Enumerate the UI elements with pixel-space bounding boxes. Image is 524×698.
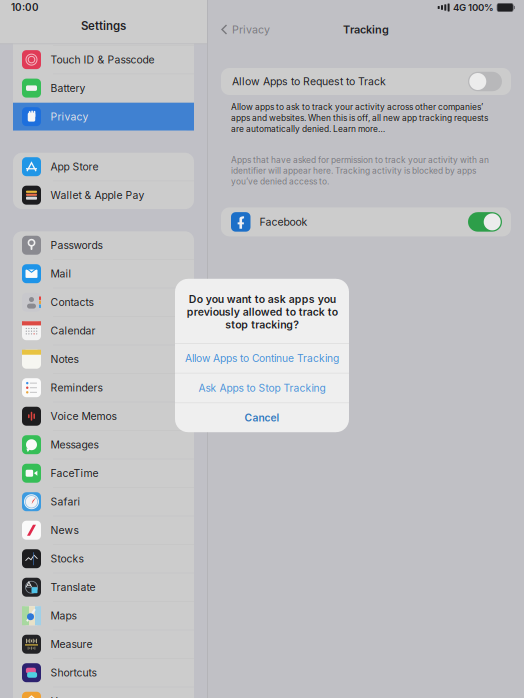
button[interactable]: Translate xyxy=(13,573,194,601)
staticText: General xyxy=(50,25,89,37)
staticText: Stocks xyxy=(50,552,83,565)
staticText: Touch ID & Passcode xyxy=(50,53,154,66)
staticText: App Store xyxy=(50,160,98,173)
button[interactable]: Messages xyxy=(13,431,194,459)
button[interactable]: Cancel xyxy=(175,403,349,432)
button[interactable]: Ask Apps to Stop Tracking xyxy=(175,373,349,402)
staticText: Maps xyxy=(50,609,76,622)
button[interactable]: FaceTime xyxy=(13,459,194,487)
staticText: Facebook xyxy=(259,215,307,228)
staticText: Passwords xyxy=(50,239,102,251)
staticText: Ask Apps to Stop Tracking xyxy=(198,382,325,394)
staticText: Translate xyxy=(50,581,95,593)
staticText: Voice Memos xyxy=(50,410,116,422)
staticText: Privacy xyxy=(232,23,270,36)
staticText: Reminders xyxy=(50,381,102,394)
staticText: Contacts xyxy=(50,296,93,308)
staticText: Allow apps to ask to track your activity… xyxy=(231,102,488,134)
staticText: Calendar xyxy=(50,324,95,337)
button[interactable]: Home xyxy=(13,687,194,698)
staticText: Tracking xyxy=(343,23,389,36)
button[interactable]: News xyxy=(13,516,194,544)
button[interactable]: Contacts xyxy=(13,288,194,316)
staticText: Safari xyxy=(50,495,80,508)
button[interactable]: Shortcuts xyxy=(13,659,194,687)
staticText: Privacy xyxy=(50,110,88,123)
staticText: Home xyxy=(50,695,79,698)
button[interactable]: Wallet & Apple Pay xyxy=(13,181,194,209)
staticText: Battery xyxy=(50,82,85,94)
button[interactable]: Passwords xyxy=(13,231,194,259)
button[interactable]: Facebook tracking on xyxy=(468,212,502,232)
button[interactable]: Privacy xyxy=(208,18,270,41)
button[interactable]: Privacy xyxy=(13,103,194,131)
staticText: Do you want to ask apps you previously a… xyxy=(186,293,337,331)
button[interactable]: Mail xyxy=(13,260,194,288)
button[interactable]: Stocks xyxy=(13,545,194,573)
staticText: Settings xyxy=(81,19,126,33)
staticText: Mail xyxy=(50,267,71,280)
staticText: Apps that have asked for permission to t… xyxy=(231,155,489,186)
button[interactable]: Maps xyxy=(13,602,194,630)
staticText: Allow Apps to Continue Tracking xyxy=(185,352,339,364)
button[interactable]: Reminders xyxy=(13,374,194,402)
staticText: Cancel xyxy=(244,411,279,424)
staticText: FaceTime xyxy=(50,467,98,479)
staticText: 4G 100% xyxy=(453,2,494,13)
button[interactable]: Notes xyxy=(13,345,194,373)
button[interactable]: Measure xyxy=(13,630,194,658)
staticText: 10:00 xyxy=(11,1,39,13)
staticText: Allow Apps to Request to Track xyxy=(232,75,386,88)
button[interactable]: App Store xyxy=(13,153,194,181)
staticText: Messages xyxy=(50,438,98,451)
staticText: News xyxy=(50,524,78,536)
button[interactable]: Allow apps to request to track, off xyxy=(468,72,502,91)
button[interactable]: Touch ID & Passcode xyxy=(13,46,194,74)
button[interactable]: Safari xyxy=(13,488,194,516)
button[interactable]: General xyxy=(13,17,194,45)
staticText: Shortcuts xyxy=(50,666,96,679)
button[interactable]: Battery xyxy=(13,74,194,102)
staticText: Notes xyxy=(50,353,78,365)
button[interactable]: Allow Apps to Continue Tracking xyxy=(175,344,349,373)
button[interactable]: Calendar xyxy=(13,317,194,345)
staticText: Wallet & Apple Pay xyxy=(50,189,144,201)
staticText: Measure xyxy=(50,638,92,650)
button[interactable]: Voice Memos xyxy=(13,402,194,430)
